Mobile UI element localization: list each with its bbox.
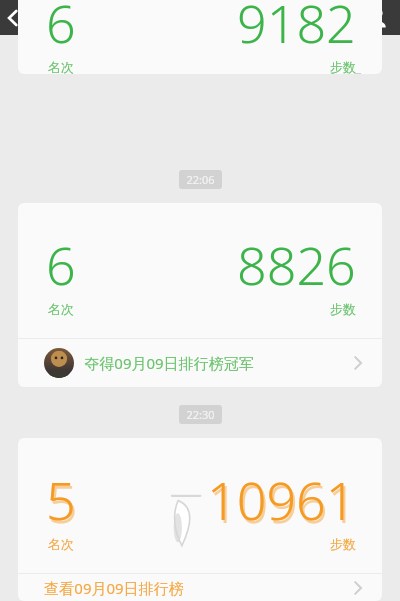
staticText: 名次 — [48, 59, 74, 74]
button[interactable]: 夺得09月09日排行榜冠军 — [18, 339, 382, 387]
staticText: 步数 — [330, 59, 356, 74]
button[interactable]: 微信(3) — [0, 4, 80, 32]
staticText: 6 — [46, 229, 76, 300]
staticText: 10961 — [209, 467, 358, 538]
staticText: 查看09月09日排行榜 — [44, 578, 184, 598]
button[interactable]: Profile — [357, 4, 400, 31]
staticText: 9182 — [237, 0, 356, 58]
staticText: 22:30 — [186, 407, 215, 422]
staticText: 步数 — [330, 536, 356, 552]
staticText: 5 — [46, 464, 76, 535]
staticText: 5 — [48, 467, 78, 538]
staticText: 名次 — [48, 536, 74, 552]
staticText: 6 — [46, 0, 76, 58]
staticText: 名次 — [48, 301, 74, 317]
staticText: 夺得09月09日排行榜冠军 — [84, 353, 254, 373]
staticText: 22:06 — [186, 172, 215, 187]
staticText: 10961 — [207, 464, 356, 535]
button[interactable]: 查看09月09日排行榜 — [18, 574, 382, 601]
staticText: 微信(3) — [22, 8, 70, 28]
staticText: 8826 — [237, 229, 356, 300]
staticText: 步数 — [330, 301, 356, 317]
